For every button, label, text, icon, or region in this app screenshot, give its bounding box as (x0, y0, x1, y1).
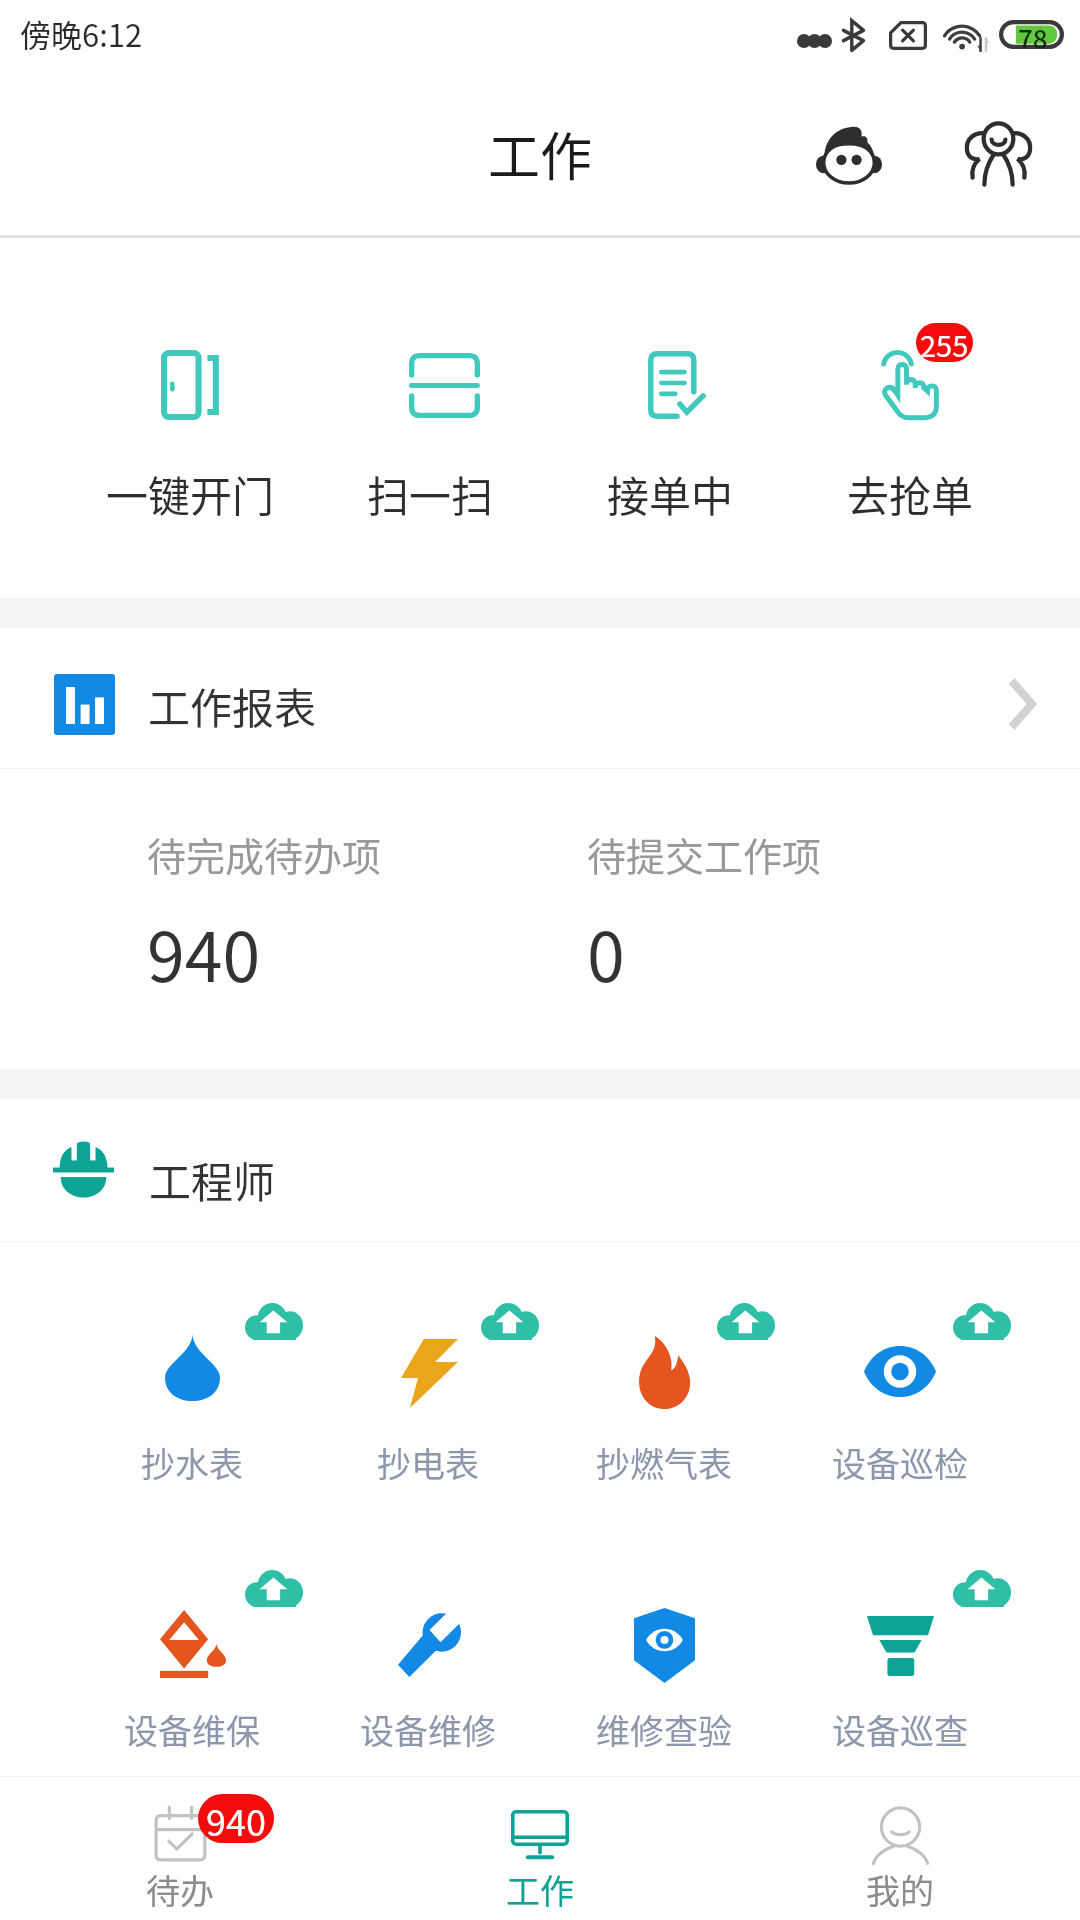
staticText: 去抢单 (847, 463, 974, 524)
staticText: 设备巡检 (832, 1438, 968, 1487)
staticText: 我的 (866, 1865, 934, 1914)
button[interactable]: 抄燃气表 (546, 1242, 782, 1509)
button[interactable]: 我的 (720, 1777, 1080, 1920)
button[interactable]: Profile (775, 72, 923, 235)
button[interactable]: 一键开门 (70, 238, 310, 598)
button[interactable]: 设备维修 (310, 1509, 546, 1776)
button[interactable]: 工作 (360, 1777, 720, 1920)
button[interactable]: 抄电表 (310, 1242, 546, 1509)
staticText: 待提交工作项 (587, 826, 822, 882)
button[interactable]: 设备巡查 (782, 1509, 1018, 1776)
staticText: 0 (587, 903, 625, 1001)
button[interactable]: Team (924, 72, 1072, 235)
button[interactable]: 工作报表 (0, 628, 1080, 768)
button[interactable]: 940 (0, 1777, 360, 1920)
staticText: 傍晚6:12 (20, 11, 143, 56)
staticText: 78 (1018, 19, 1048, 48)
staticText: 抄燃气表 (596, 1438, 732, 1487)
staticText: 工作 (488, 116, 593, 191)
button[interactable]: 维修查验 (546, 1509, 782, 1776)
staticText: 255 (920, 323, 969, 362)
button[interactable]: 255 (790, 238, 1030, 598)
staticText: 维修查验 (596, 1705, 732, 1754)
staticText: 抄电表 (377, 1438, 479, 1487)
staticText: 设备巡查 (832, 1705, 968, 1754)
staticText: 工作报表 (148, 675, 317, 736)
staticText: 940 (147, 903, 261, 1001)
staticText: 抄水表 (141, 1438, 243, 1487)
staticText: 工作 (506, 1865, 574, 1914)
staticText: 扫一扫 (367, 463, 494, 524)
button[interactable]: 扫一扫 (310, 238, 550, 598)
staticText: 接单中 (607, 463, 734, 524)
button[interactable]: 接单中 (550, 238, 790, 598)
button[interactable]: 设备巡检 (782, 1242, 1018, 1509)
staticText: 工程师 (149, 1149, 276, 1210)
staticText: 940 (206, 1794, 266, 1843)
staticText: 待办 (146, 1865, 214, 1914)
button[interactable]: 设备维保 (73, 1509, 310, 1776)
staticText: 一键开门 (106, 463, 275, 524)
staticText: 设备维保 (124, 1705, 260, 1754)
staticText: 待完成待办项 (147, 826, 382, 882)
staticText: 设备维修 (360, 1705, 496, 1754)
button[interactable]: 抄水表 (73, 1242, 310, 1509)
